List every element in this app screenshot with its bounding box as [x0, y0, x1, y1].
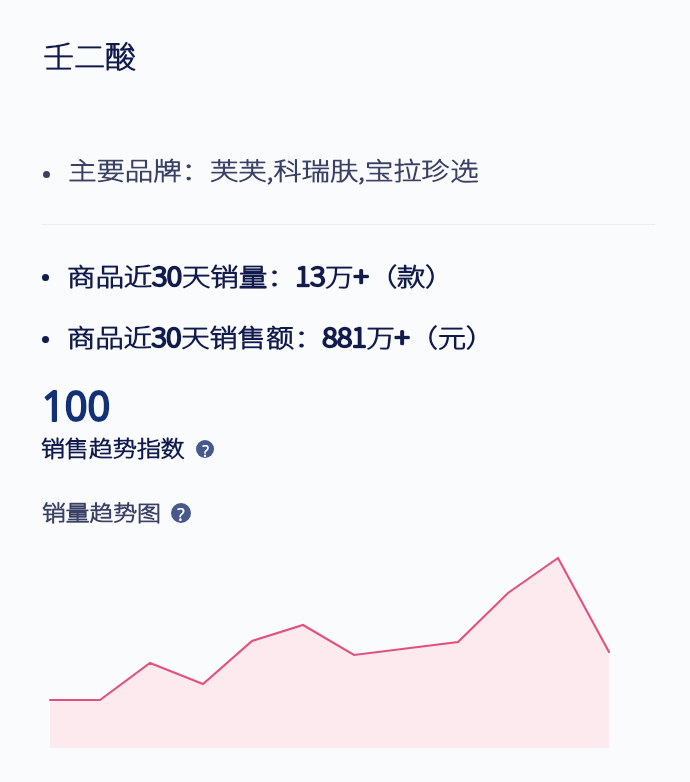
staticText: 商品近30天销量：13万+（款）	[68, 257, 455, 293]
staticText: 商品近30天销售额：881万+（元）	[67, 318, 495, 354]
staticText: ?	[177, 503, 185, 523]
staticText: 100	[42, 376, 111, 433]
staticText: 商品近30天销售额：881万+（元）	[68, 318, 496, 354]
staticText: 商品近30天销售额：881万+（元）	[67, 318, 495, 354]
staticText: 商品近30天销量：13万+（款）	[67, 257, 455, 293]
staticText: 商品近30天销量：13万+（款）	[67, 257, 455, 293]
button[interactable]: 销售趋势指数 说明	[196, 440, 214, 458]
staticText: 销量趋势图	[42, 495, 162, 527]
staticText: 主要品牌：芙芙,科瑞肤,宝拉珍选	[68, 151, 479, 187]
staticText: 100	[42, 376, 111, 433]
staticText: 壬二酸	[43, 32, 136, 77]
staticText: 商品近30天销售额：881万+（元）	[67, 318, 495, 354]
staticText: 销量趋势图	[42, 495, 162, 527]
staticText: 销售趋势指数	[41, 430, 184, 463]
staticText: 销售趋势指数	[42, 430, 185, 463]
button[interactable]: 销量趋势图 说明	[171, 503, 191, 523]
staticText: 主要品牌：芙芙,科瑞肤,宝拉珍选	[68, 151, 479, 187]
staticText: 商品近30天销量：13万+（款）	[67, 257, 455, 293]
staticText: 销售趋势指数	[41, 430, 184, 463]
staticText: 壬二酸	[43, 32, 136, 77]
staticText: 壬二酸	[44, 32, 137, 77]
staticText: ?	[202, 440, 209, 458]
